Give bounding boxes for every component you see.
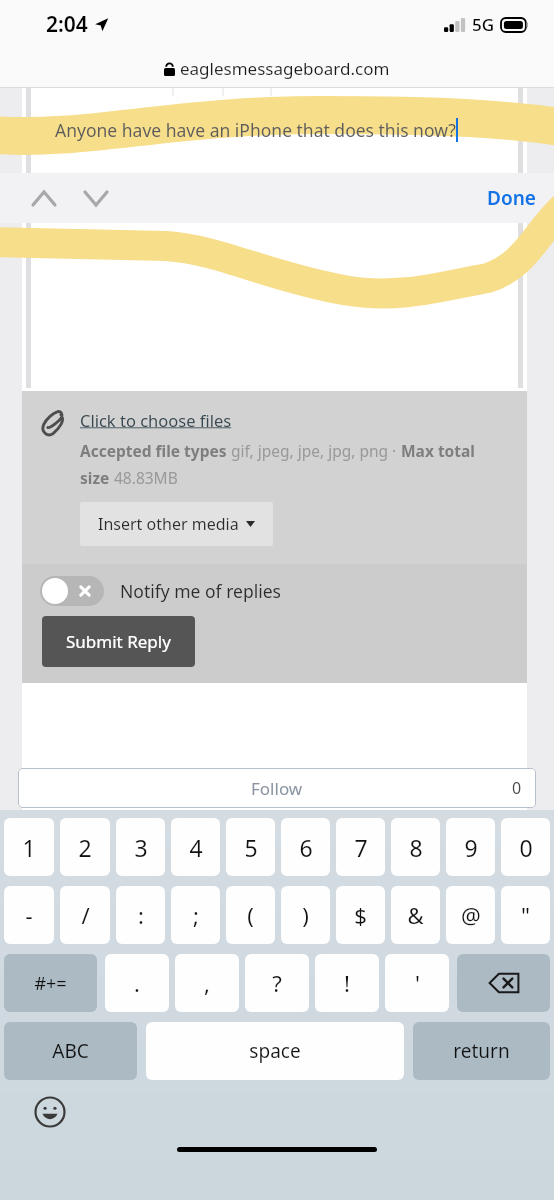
button[interactable]: 2 [60,818,110,876]
button[interactable]: Follow [18,768,536,808]
button[interactable]: 5 [226,818,275,876]
button[interactable]: 1 [4,818,54,876]
staticText: size [80,467,114,488]
staticText: 9 [464,832,478,863]
button[interactable]: Notify me of replies [40,576,281,606]
button[interactable]: 8 [391,818,440,876]
staticText: ? [272,968,282,998]
button[interactable]: Backspace [457,954,550,1012]
staticText: 6 [299,832,313,863]
button[interactable]: ABC [4,1022,137,1080]
button[interactable]: 7 [336,818,385,876]
staticText: " [521,900,530,930]
staticText: $ [354,900,367,930]
staticText: @ [461,900,481,930]
button[interactable]: 3 [116,818,165,876]
button[interactable]: #+= [4,954,97,1012]
button[interactable]: 6 [281,818,330,876]
button[interactable]: 4 [171,818,220,876]
staticText: ) [302,900,309,930]
button[interactable]: ( [226,886,275,944]
staticText: ; [193,900,199,930]
staticText: Max total [401,440,475,461]
button[interactable]: Previous field [24,178,64,218]
staticText: & [407,900,424,930]
staticText: return [453,1038,510,1064]
button[interactable]: 9 [446,818,495,876]
button[interactable]: Emoji keyboard [30,1092,70,1132]
staticText: gif, jpeg, jpe, jpg, png · [231,440,401,461]
staticText: 0 [519,832,533,863]
staticText: ( [247,900,254,930]
staticText: #+= [34,971,67,996]
staticText: 5G [472,13,495,36]
staticText: Done [487,185,536,211]
button[interactable]: ) [281,886,330,944]
staticText: : [138,900,144,930]
staticText: Submit Reply [66,630,171,653]
staticText: 8 [409,832,423,863]
staticText: Anyone have have an iPhone that does thi… [55,118,456,142]
button[interactable]: 0 [501,818,550,876]
button[interactable]: return [413,1022,550,1080]
button[interactable]: ! [315,954,379,1012]
staticText: eaglesmessageboard.com [180,57,390,80]
staticText: 3 [134,832,148,863]
button[interactable]: Click to choose files [80,409,236,431]
staticText: 2:04 [46,10,88,39]
staticText: space [249,1038,301,1064]
staticText: , [204,968,210,998]
button[interactable]: & [391,886,440,944]
button[interactable]: . [105,954,169,1012]
staticText: 0 [512,777,522,799]
staticText: 5 [244,832,258,863]
staticText: / [81,900,90,930]
button[interactable]: - [4,886,54,944]
staticText: 48.83MB [114,467,178,488]
button[interactable]: $ [336,886,385,944]
staticText: ABC [52,1038,89,1064]
button[interactable]: Insert other media [80,502,273,546]
button[interactable]: ; [171,886,220,944]
staticText: . [134,968,140,998]
staticText: Follow [251,777,303,800]
button[interactable]: eaglesmessageboard.com [0,48,554,88]
staticText: 2 [78,832,92,863]
staticText: ! [344,968,350,998]
staticText: GO TO TOPIC LISTING [62,856,206,874]
staticText: Click to choose files [80,409,236,431]
button[interactable]: / [60,886,110,944]
button[interactable]: Done [469,175,554,221]
staticText: 7 [354,832,368,863]
button[interactable]: Submit Reply [42,616,195,667]
staticText: Insert other media [98,513,239,535]
button[interactable]: ' [385,954,449,1012]
staticText: 1 [22,832,36,863]
button[interactable]: ? [245,954,309,1012]
button[interactable]: @ [446,886,495,944]
staticText: - [25,900,33,930]
staticText: Accepted file types [80,440,231,461]
button[interactable]: space [146,1022,404,1080]
button[interactable]: " [501,886,550,944]
button[interactable]: : [116,886,165,944]
staticText: Notify me of replies [120,579,281,603]
button[interactable]: Next field [76,178,116,218]
staticText: 4 [189,832,203,863]
button[interactable]: , [175,954,239,1012]
button[interactable]: GO TO TOPIC LISTING [30,850,206,880]
staticText: ' [415,968,420,998]
